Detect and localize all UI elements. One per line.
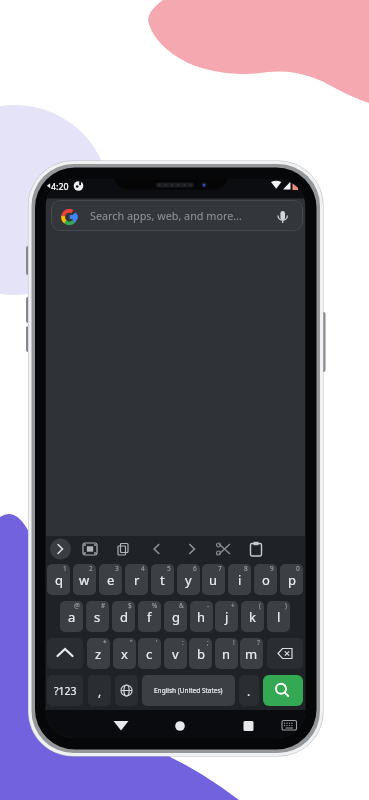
- staticText: #: [101, 601, 106, 610]
- staticText: d: [120, 608, 128, 626]
- button[interactable]: z: [87, 638, 110, 669]
- button[interactable]: .: [239, 675, 259, 706]
- button[interactable]: [166, 712, 194, 738]
- staticText: q: [55, 571, 63, 589]
- button[interactable]: m: [240, 638, 263, 669]
- staticText: u: [209, 571, 218, 589]
- button[interactable]: English (United States): [142, 675, 235, 706]
- button[interactable]: [145, 538, 167, 560]
- button[interactable]: q: [47, 564, 70, 595]
- button[interactable]: [49, 538, 72, 560]
- staticText: %: [152, 601, 158, 610]
- staticText: -: [207, 601, 210, 610]
- button[interactable]: [181, 538, 203, 560]
- staticText: 5: [167, 564, 171, 573]
- button[interactable]: y: [177, 564, 200, 595]
- staticText: e: [107, 571, 115, 589]
- button[interactable]: d: [112, 601, 135, 632]
- staticText: 6: [193, 564, 197, 573]
- button[interactable]: [213, 538, 235, 560]
- button[interactable]: [79, 538, 101, 560]
- button[interactable]: Search apps, web, and more…: [51, 200, 303, 231]
- staticText: $: [128, 601, 132, 610]
- staticText: &: [179, 601, 184, 610]
- staticText: 0: [296, 564, 300, 573]
- button[interactable]: [234, 712, 262, 738]
- staticText: b: [197, 645, 205, 663]
- staticText: 9: [270, 564, 274, 573]
- button[interactable]: n: [215, 638, 238, 669]
- button[interactable]: [278, 712, 302, 738]
- staticText: ': [156, 638, 158, 647]
- staticText: 8: [244, 564, 248, 573]
- staticText: ): [285, 601, 287, 610]
- button[interactable]: s: [86, 601, 109, 632]
- staticText: n: [222, 645, 231, 663]
- button[interactable]: o: [254, 564, 277, 595]
- button[interactable]: t: [151, 564, 174, 595]
- staticText: @: [74, 601, 80, 610]
- staticText: i: [238, 571, 242, 589]
- staticText: ?: [257, 638, 260, 647]
- button[interactable]: w: [73, 564, 96, 595]
- staticText: ": [130, 638, 133, 647]
- staticText: English (United States): [154, 686, 223, 695]
- button[interactable]: x: [113, 638, 136, 669]
- staticText: j: [225, 608, 229, 626]
- staticText: 4: [141, 564, 145, 573]
- button[interactable]: e: [99, 564, 122, 595]
- staticText: k: [249, 608, 256, 626]
- staticText: (: [259, 601, 261, 610]
- button[interactable]: [47, 638, 83, 669]
- staticText: y: [185, 571, 192, 589]
- button[interactable]: ?123: [47, 675, 83, 706]
- button[interactable]: k: [241, 601, 264, 632]
- button[interactable]: h: [190, 601, 213, 632]
- staticText: w: [79, 571, 90, 589]
- button[interactable]: [115, 675, 138, 706]
- staticText: v: [172, 645, 179, 663]
- button[interactable]: [107, 712, 135, 738]
- button[interactable]: [263, 675, 303, 706]
- button[interactable]: j: [215, 601, 238, 632]
- staticText: r: [134, 571, 140, 589]
- button[interactable]: v: [164, 638, 187, 669]
- button[interactable]: f: [138, 601, 161, 632]
- button[interactable]: b: [189, 638, 212, 669]
- staticText: a: [68, 608, 76, 626]
- button[interactable]: c: [138, 638, 161, 669]
- staticText: 7: [218, 564, 222, 573]
- staticText: +: [231, 601, 235, 610]
- button[interactable]: [112, 538, 134, 560]
- staticText: ,: [98, 683, 102, 699]
- staticText: m: [245, 645, 258, 663]
- staticText: c: [146, 645, 153, 663]
- staticText: z: [95, 645, 102, 663]
- staticText: *: [103, 638, 107, 647]
- button[interactable]: u: [202, 564, 225, 595]
- staticText: 4:20: [51, 181, 69, 193]
- staticText: 1: [63, 564, 67, 573]
- button[interactable]: a: [60, 601, 83, 632]
- button[interactable]: g: [164, 601, 187, 632]
- staticText: h: [197, 608, 206, 626]
- staticText: .: [247, 683, 251, 699]
- staticText: p: [288, 571, 296, 589]
- staticText: f: [147, 608, 152, 626]
- staticText: l: [277, 608, 281, 626]
- button[interactable]: r: [125, 564, 148, 595]
- staticText: x: [121, 645, 128, 663]
- button[interactable]: p: [280, 564, 303, 595]
- staticText: ?123: [54, 684, 77, 698]
- staticText: Search apps, web, and more…: [90, 208, 242, 223]
- button[interactable]: ,: [88, 675, 111, 706]
- button[interactable]: i: [228, 564, 251, 595]
- staticText: t: [160, 571, 165, 589]
- staticText: o: [262, 571, 270, 589]
- button[interactable]: [267, 638, 303, 669]
- button[interactable]: [245, 538, 267, 560]
- staticText: s: [94, 608, 101, 626]
- staticText: 2: [89, 564, 93, 573]
- staticText: ;: [207, 638, 209, 647]
- button[interactable]: l: [267, 601, 290, 632]
